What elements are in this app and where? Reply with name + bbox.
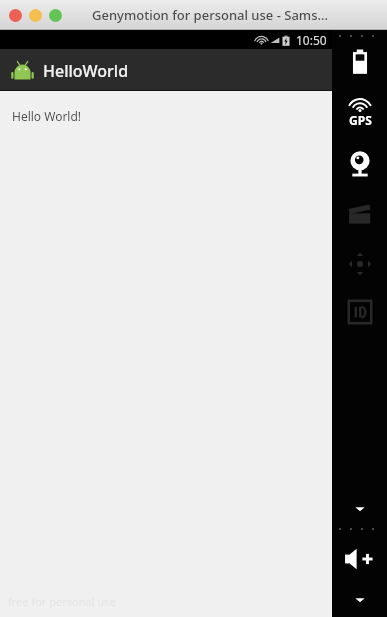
button[interactable]: HelloWorld	[0, 49, 332, 91]
staticText: free for personal use	[8, 594, 116, 609]
button[interactable]: Battery	[344, 46, 376, 78]
button[interactable]: Volume up	[343, 542, 377, 576]
staticText: 10:50	[296, 32, 327, 48]
button[interactable]: Scroll down	[351, 591, 369, 609]
staticText: GPS	[349, 112, 372, 128]
button[interactable]: D-pad	[344, 248, 376, 280]
button[interactable]: Close	[9, 9, 22, 22]
staticText: Genymotion for personal use - Sams...	[92, 6, 329, 24]
button[interactable]: Camera	[344, 148, 376, 180]
button[interactable]: Identifiers	[344, 296, 376, 328]
button[interactable]: Minimize	[29, 9, 42, 22]
button[interactable]: Zoom	[49, 9, 62, 22]
button[interactable]: Video recorder	[344, 198, 376, 230]
staticText: Hello World!	[12, 108, 82, 124]
button[interactable]: Scroll up	[351, 500, 369, 518]
staticText: HelloWorld	[43, 60, 129, 82]
button[interactable]: GPS	[347, 98, 373, 128]
